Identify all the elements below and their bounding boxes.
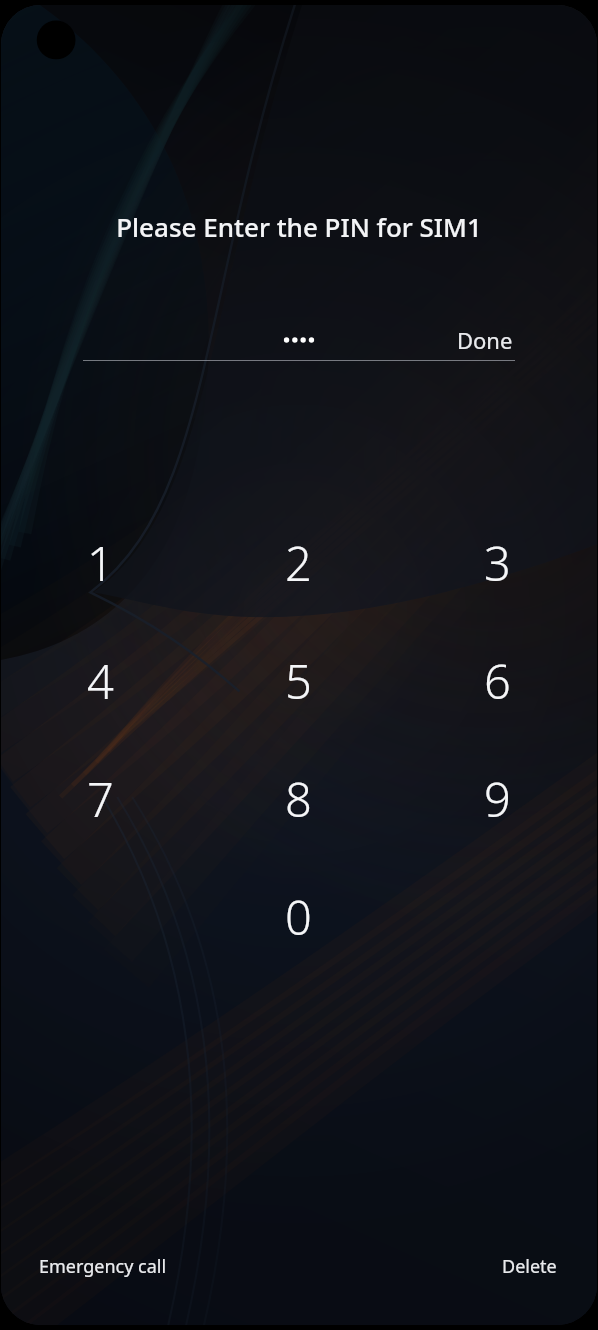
button[interactable]: 9	[398, 740, 597, 858]
button[interactable]: 5	[199, 622, 398, 740]
staticText: 2	[285, 531, 312, 595]
button[interactable]: Done	[455, 320, 515, 360]
staticText: 6	[484, 649, 511, 713]
staticText: 9	[484, 767, 511, 831]
button[interactable]: 7	[1, 740, 199, 858]
staticText: 5	[285, 649, 312, 713]
button[interactable]: 6	[398, 622, 597, 740]
staticText: 8	[285, 767, 312, 831]
button[interactable]: Emergency call	[37, 1248, 169, 1285]
button[interactable]: 1	[1, 504, 199, 622]
staticText: 1	[87, 531, 114, 595]
staticText: Delete	[502, 1254, 557, 1279]
staticText: 4	[87, 649, 114, 713]
button[interactable]: 0	[199, 858, 398, 976]
button[interactable]: 2	[199, 504, 398, 622]
button[interactable]	[83, 320, 515, 360]
staticText: 3	[484, 531, 511, 595]
staticText: Done	[457, 325, 513, 355]
button[interactable]: Delete	[500, 1248, 559, 1285]
staticText: Please Enter the PIN for SIM1	[116, 209, 482, 244]
button[interactable]: 3	[398, 504, 597, 622]
staticText: 7	[87, 767, 114, 831]
button[interactable]: 4	[1, 622, 199, 740]
staticText: 0	[285, 885, 312, 949]
staticText: Emergency call	[39, 1254, 167, 1279]
button[interactable]: 8	[199, 740, 398, 858]
